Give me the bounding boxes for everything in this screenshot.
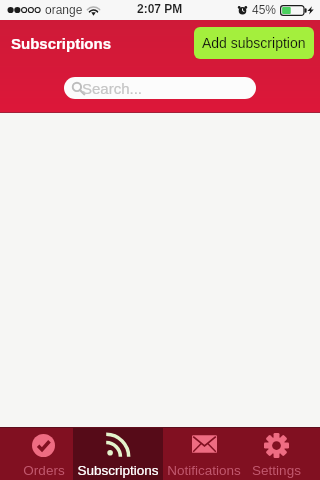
button[interactable]: Search... xyxy=(64,77,256,99)
button[interactable]: Notifications xyxy=(164,427,244,480)
staticText: Settings xyxy=(252,463,301,478)
button[interactable]: Add subscription xyxy=(194,27,314,59)
staticText: Subscriptions xyxy=(77,463,159,478)
staticText: 2:07 PM xyxy=(137,2,183,15)
button[interactable]: Subscriptions xyxy=(73,427,163,480)
staticText: Search... xyxy=(82,80,143,97)
staticText: Add subscription xyxy=(202,35,306,51)
staticText: Subscriptions xyxy=(11,35,112,52)
staticText: Orders xyxy=(23,463,65,478)
button[interactable]: Orders xyxy=(7,427,80,480)
staticText: orange xyxy=(45,3,83,16)
staticText: Notifications xyxy=(167,463,241,478)
staticText: 45% xyxy=(252,3,277,16)
button[interactable]: Settings xyxy=(238,427,315,480)
